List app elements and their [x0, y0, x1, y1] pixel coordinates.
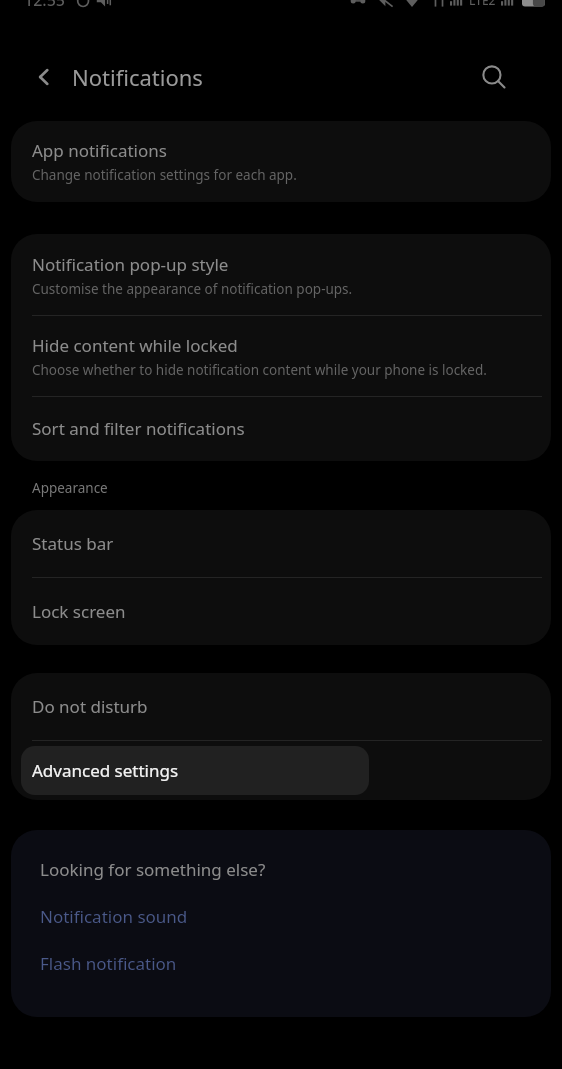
staticText: Notification pop-up style	[32, 253, 229, 276]
staticText: Flash notification	[40, 952, 177, 975]
staticText: Customise the appearance of notification…	[32, 280, 353, 298]
staticText: Lock screen	[32, 600, 126, 623]
button[interactable]: Back	[22, 55, 66, 99]
staticText: 12:55	[24, 0, 65, 11]
staticText: Hide content while locked	[32, 334, 238, 357]
button[interactable]: Status bar	[11, 510, 551, 577]
staticText: Change notification settings for each ap…	[32, 166, 297, 184]
staticText: Do not disturb	[32, 695, 148, 718]
button[interactable]: Sort and filter notifications	[11, 397, 551, 461]
button[interactable]: Advanced settings	[21, 746, 369, 795]
button[interactable]: Lock screen	[11, 578, 551, 645]
button[interactable]: Notification pop-up style	[11, 234, 551, 315]
staticText: LTE2	[469, 0, 496, 8]
staticText: Notifications	[72, 62, 203, 92]
staticText: Advanced settings	[32, 759, 179, 782]
button[interactable]: Search	[471, 54, 517, 100]
staticText: Status bar	[32, 532, 114, 555]
staticText: Sort and filter notifications	[32, 417, 245, 440]
button[interactable]: App notifications	[11, 121, 551, 202]
button[interactable]: Flash notification	[11, 950, 551, 977]
staticText: App notifications	[32, 139, 167, 162]
button[interactable]: Notification sound	[11, 903, 551, 930]
staticText: Looking for something else?	[40, 858, 266, 881]
staticText: Appearance	[32, 479, 108, 497]
staticText: Notification sound	[40, 905, 188, 928]
button[interactable]: Hide content while locked	[11, 316, 551, 396]
staticText: Choose whether to hide notification cont…	[32, 361, 487, 379]
button[interactable]: Do not disturb	[11, 673, 551, 740]
